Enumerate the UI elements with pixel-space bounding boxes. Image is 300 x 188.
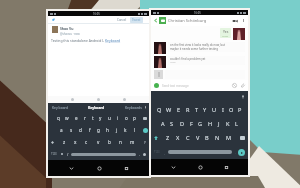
other: More options: [241, 18, 246, 23]
staticText: l: [134, 127, 136, 133]
staticText: X: [176, 134, 180, 142]
staticText: J: [218, 120, 220, 128]
other: Voice input: [241, 95, 245, 99]
staticText: L: [235, 120, 238, 128]
staticText: 16:05: [194, 11, 201, 15]
other: Video call: [232, 18, 238, 24]
other: Send: [238, 149, 245, 156]
button[interactable]: Back: [168, 162, 178, 172]
staticText: .: [139, 152, 140, 157]
staticText: u: [108, 115, 111, 121]
staticText: z: [63, 139, 66, 145]
button[interactable]: Recent apps: [121, 163, 131, 173]
staticText: R: [186, 106, 190, 114]
button[interactable]: Action: [123, 98, 126, 101]
staticText: b: [108, 139, 111, 145]
staticText: couldn't find a problem yet: [170, 57, 206, 61]
staticText: t: [92, 115, 94, 121]
staticText: Q: [157, 106, 162, 114]
staticText: e: [75, 115, 78, 121]
staticText: G: [198, 120, 203, 128]
staticText: W: [166, 106, 172, 114]
other: Emoji: [154, 83, 159, 88]
staticText: q: [57, 115, 60, 121]
staticText: x: [74, 139, 77, 145]
staticText: a: [60, 127, 63, 133]
staticText: Key board: [52, 105, 69, 110]
staticText: k: [124, 127, 127, 133]
staticText: f: [89, 127, 91, 133]
staticText: d: [79, 127, 82, 133]
staticText: D: [180, 120, 185, 128]
staticText: Tweet: [132, 18, 141, 22]
staticText: C: [186, 134, 190, 142]
button[interactable]: Home: [195, 162, 205, 172]
other: Enter: [143, 128, 148, 133]
staticText: 16:05: [93, 12, 100, 16]
staticText: Christian Schönburg: [168, 18, 207, 23]
staticText: c: [85, 139, 88, 145]
staticText: Y: [203, 106, 207, 114]
button[interactable]: Home: [94, 163, 104, 173]
other: Twitter: [52, 18, 55, 21]
staticText: r: [84, 115, 86, 121]
staticText: U: [212, 106, 217, 114]
staticText: Testing this standalone Android L: [51, 38, 105, 43]
button[interactable]: Recent apps: [221, 162, 231, 172]
staticText: Send text message: [162, 84, 189, 88]
staticText: O: [229, 106, 234, 114]
staticText: w: [65, 115, 69, 121]
staticText: ,: [164, 150, 165, 155]
staticText: p: [133, 115, 136, 121]
staticText: N: [215, 134, 220, 142]
button[interactable]: Back: [151, 15, 248, 26]
staticText: s: [70, 127, 73, 133]
other: Attach: [240, 83, 245, 88]
button[interactable]: Action: [97, 98, 100, 101]
staticText: on the first view it looks really ok now…: [170, 43, 225, 51]
staticText: A: [161, 120, 165, 128]
other: Back: [153, 18, 158, 23]
staticText: 16:04: [222, 34, 229, 37]
staticText: y: [99, 115, 102, 121]
staticText: h: [106, 127, 109, 133]
staticText: Keyboard: [105, 38, 121, 43]
staticText: m: [130, 139, 135, 145]
staticText: T: [195, 106, 199, 114]
staticText: Cancel: [117, 18, 127, 22]
staticText: 16:05: [170, 61, 176, 64]
staticText: K: [226, 120, 230, 128]
staticText: v: [97, 139, 100, 145]
staticText: P: [238, 106, 242, 114]
staticText: Z: [166, 134, 170, 142]
staticText: F: [190, 120, 193, 128]
other: Backspace: [240, 136, 245, 140]
staticText: n: [119, 139, 122, 145]
staticText: I: [222, 106, 224, 114]
button[interactable]: Action: [71, 98, 74, 101]
staticText: E: [177, 106, 181, 114]
staticText: V: [196, 134, 200, 142]
button[interactable]: Tweet: [132, 18, 141, 22]
staticText: Yes: [223, 29, 229, 34]
other: Backspace: [143, 117, 147, 120]
staticText: ?123: [154, 150, 160, 154]
staticText: ?: [144, 140, 146, 145]
other: Voice input: [144, 106, 147, 109]
staticText: o: [125, 115, 128, 121]
other: Shift: [51, 141, 54, 144]
staticText: g: [97, 127, 100, 133]
staticText: Keyboards: [125, 105, 142, 110]
staticText: Keyboard: [88, 105, 105, 110]
staticText: i: [117, 115, 119, 121]
staticText: S: [170, 120, 174, 128]
staticText: B: [205, 134, 209, 142]
staticText: /: [67, 152, 69, 157]
staticText: M: [226, 134, 232, 142]
other: Sticker: [232, 83, 237, 88]
button[interactable]: Back: [66, 163, 76, 173]
staticText: Shao Vu: [60, 26, 74, 31]
staticText: .: [235, 150, 236, 155]
staticText: ?123: [51, 152, 57, 156]
other: Shift: [154, 136, 158, 140]
